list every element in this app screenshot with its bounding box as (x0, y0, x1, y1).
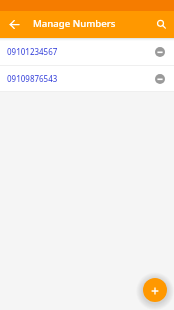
button[interactable]: Search (148, 11, 174, 38)
button[interactable]: Remove number (148, 67, 172, 91)
button[interactable]: Add number (143, 278, 167, 302)
staticText: 09101234567 (7, 46, 58, 57)
button[interactable]: Back (0, 11, 28, 38)
button[interactable]: 09101234567 (0, 38, 174, 65)
staticText: 09109876543 (7, 73, 58, 84)
button[interactable]: 09109876543 (0, 66, 174, 91)
button[interactable]: Remove number (148, 40, 172, 64)
staticText: Manage Numbers (33, 17, 116, 30)
